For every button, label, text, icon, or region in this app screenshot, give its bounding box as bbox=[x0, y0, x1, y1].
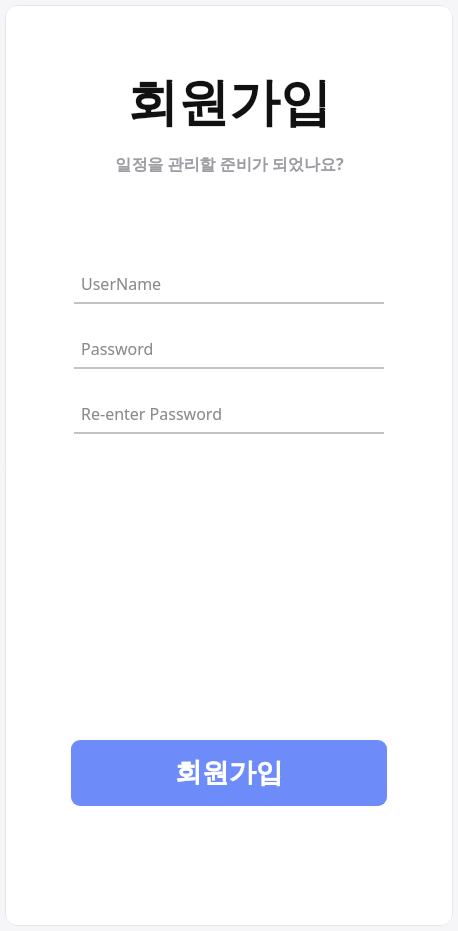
staticText: Re-enter Password bbox=[81, 403, 222, 425]
staticText: UserName bbox=[81, 273, 162, 295]
staticText: 회원가입 bbox=[127, 71, 331, 135]
button[interactable]: Password bbox=[74, 338, 384, 369]
staticText: 일정을 관리할 준비가 되었나요? bbox=[115, 153, 344, 175]
button[interactable]: Re-enter Password bbox=[74, 403, 384, 434]
staticText: Password bbox=[81, 338, 154, 360]
button[interactable]: UserName bbox=[74, 273, 384, 304]
staticText: 회원가입 bbox=[175, 756, 283, 790]
button[interactable]: 회원가입 bbox=[71, 740, 387, 806]
